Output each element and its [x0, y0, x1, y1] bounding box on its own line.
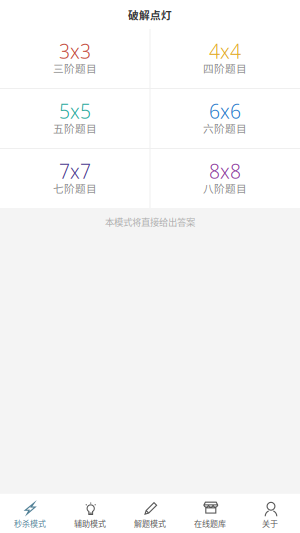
button[interactable]: 7x7 [0, 149, 149, 208]
staticText: 8x8 [209, 158, 241, 184]
staticText: 关于 [262, 517, 278, 529]
staticText: 6x6 [209, 98, 241, 124]
staticText: 秒杀模式 [14, 517, 46, 529]
staticText: 7x7 [59, 158, 91, 184]
staticText: 四阶题目 [203, 60, 247, 76]
staticText: 5x5 [59, 98, 91, 124]
button[interactable]: 辅助模式 [60, 493, 120, 533]
button[interactable]: 4x4 [150, 29, 299, 88]
button[interactable]: 解题模式 [120, 493, 180, 533]
staticText: 七阶题目 [53, 180, 97, 196]
staticText: 4x4 [209, 38, 241, 64]
staticText: 本模式将直接给出答案 [105, 215, 195, 228]
staticText: 在线题库 [194, 517, 226, 529]
button[interactable]: 8x8 [150, 149, 299, 208]
button[interactable]: 5x5 [0, 89, 149, 148]
button[interactable]: 秒杀模式 [0, 493, 60, 533]
staticText: 解题模式 [134, 517, 166, 529]
staticText: 3x3 [59, 38, 91, 64]
staticText: 辅助模式 [74, 517, 106, 529]
button[interactable]: 3x3 [0, 29, 149, 88]
staticText: 六阶题目 [203, 120, 247, 136]
staticText: 五阶题目 [53, 120, 97, 136]
button[interactable]: 关于 [240, 493, 300, 533]
button[interactable]: 在线题库 [180, 493, 240, 533]
staticText: 八阶题目 [203, 180, 247, 196]
staticText: 破解点灯 [128, 7, 172, 22]
staticText: 三阶题目 [53, 60, 97, 76]
button[interactable]: 6x6 [150, 89, 299, 148]
